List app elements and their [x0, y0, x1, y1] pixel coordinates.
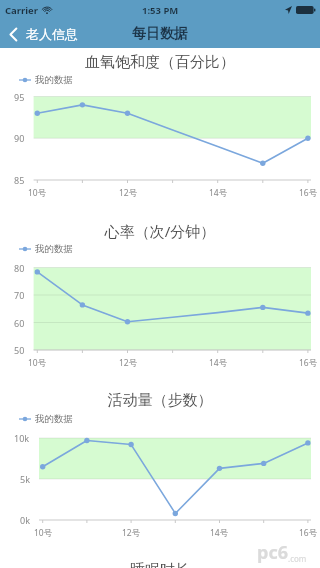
staticText: 每日数据: [132, 25, 188, 43]
staticText: 14号: [209, 357, 228, 369]
staticText: 95: [14, 91, 25, 103]
staticText: 70: [14, 289, 25, 301]
staticText: 5k: [20, 473, 30, 485]
button[interactable]: 老人信息: [0, 22, 86, 46]
staticText: 睡眠时长: [0, 561, 320, 568]
staticText: .com: [288, 553, 307, 564]
staticText: 50: [14, 344, 25, 356]
staticText: 血氧饱和度（百分比）: [0, 53, 320, 72]
staticText: 1:53 PM: [142, 4, 179, 17]
staticText: 心率（次/分钟）: [0, 221, 320, 241]
staticText: 60: [14, 317, 25, 329]
staticText: 90: [14, 132, 25, 144]
staticText: 12号: [119, 187, 138, 199]
staticText: Carrier: [5, 4, 39, 17]
staticText: 10k: [14, 432, 30, 444]
staticText: 我的数据: [35, 74, 73, 86]
staticText: 80: [14, 262, 25, 274]
staticText: 16号: [299, 187, 318, 199]
staticText: 12号: [122, 527, 141, 539]
staticText: 16号: [299, 527, 318, 539]
staticText: 我的数据: [35, 243, 73, 255]
staticText: 85: [14, 174, 25, 186]
staticText: 老人信息: [26, 26, 78, 42]
staticText: 活动量（步数）: [0, 391, 320, 410]
staticText: 16号: [299, 357, 318, 369]
staticText: 0k: [20, 514, 30, 526]
staticText: 14号: [210, 527, 229, 539]
staticText: 14号: [209, 187, 228, 199]
staticText: pc6: [257, 540, 288, 565]
staticText: 10号: [28, 357, 47, 369]
staticText: 10号: [28, 187, 47, 199]
staticText: 12号: [119, 357, 138, 369]
staticText: 我的数据: [35, 413, 73, 425]
staticText: 10号: [34, 527, 53, 539]
